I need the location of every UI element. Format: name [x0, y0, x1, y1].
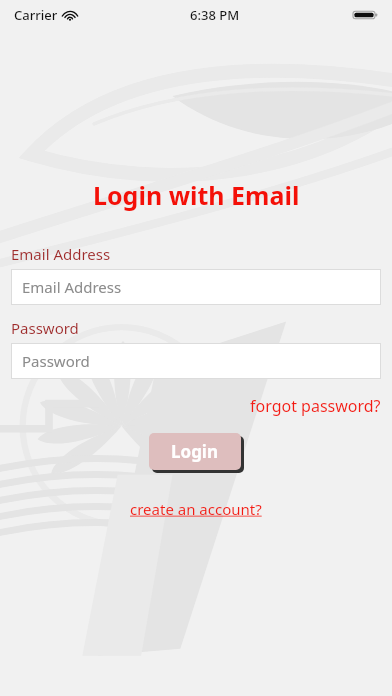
staticText: Login with Email [93, 178, 300, 212]
staticText: Login [171, 440, 219, 463]
button[interactable]: Password [11, 343, 381, 379]
staticText: Password [11, 318, 79, 338]
button[interactable]: forgot password? [242, 393, 392, 419]
button[interactable]: create an account? [124, 496, 268, 522]
staticText: Password [22, 351, 90, 371]
staticText: Email Address [22, 277, 122, 297]
button[interactable]: Email Address [11, 269, 381, 305]
staticText: 6:38 PM [190, 6, 240, 24]
staticText: forgot password? [250, 395, 381, 417]
staticText: create an account? [130, 499, 262, 519]
button[interactable]: Login [149, 433, 241, 470]
staticText: Email Address [11, 244, 111, 264]
staticText: Carrier [14, 6, 58, 24]
